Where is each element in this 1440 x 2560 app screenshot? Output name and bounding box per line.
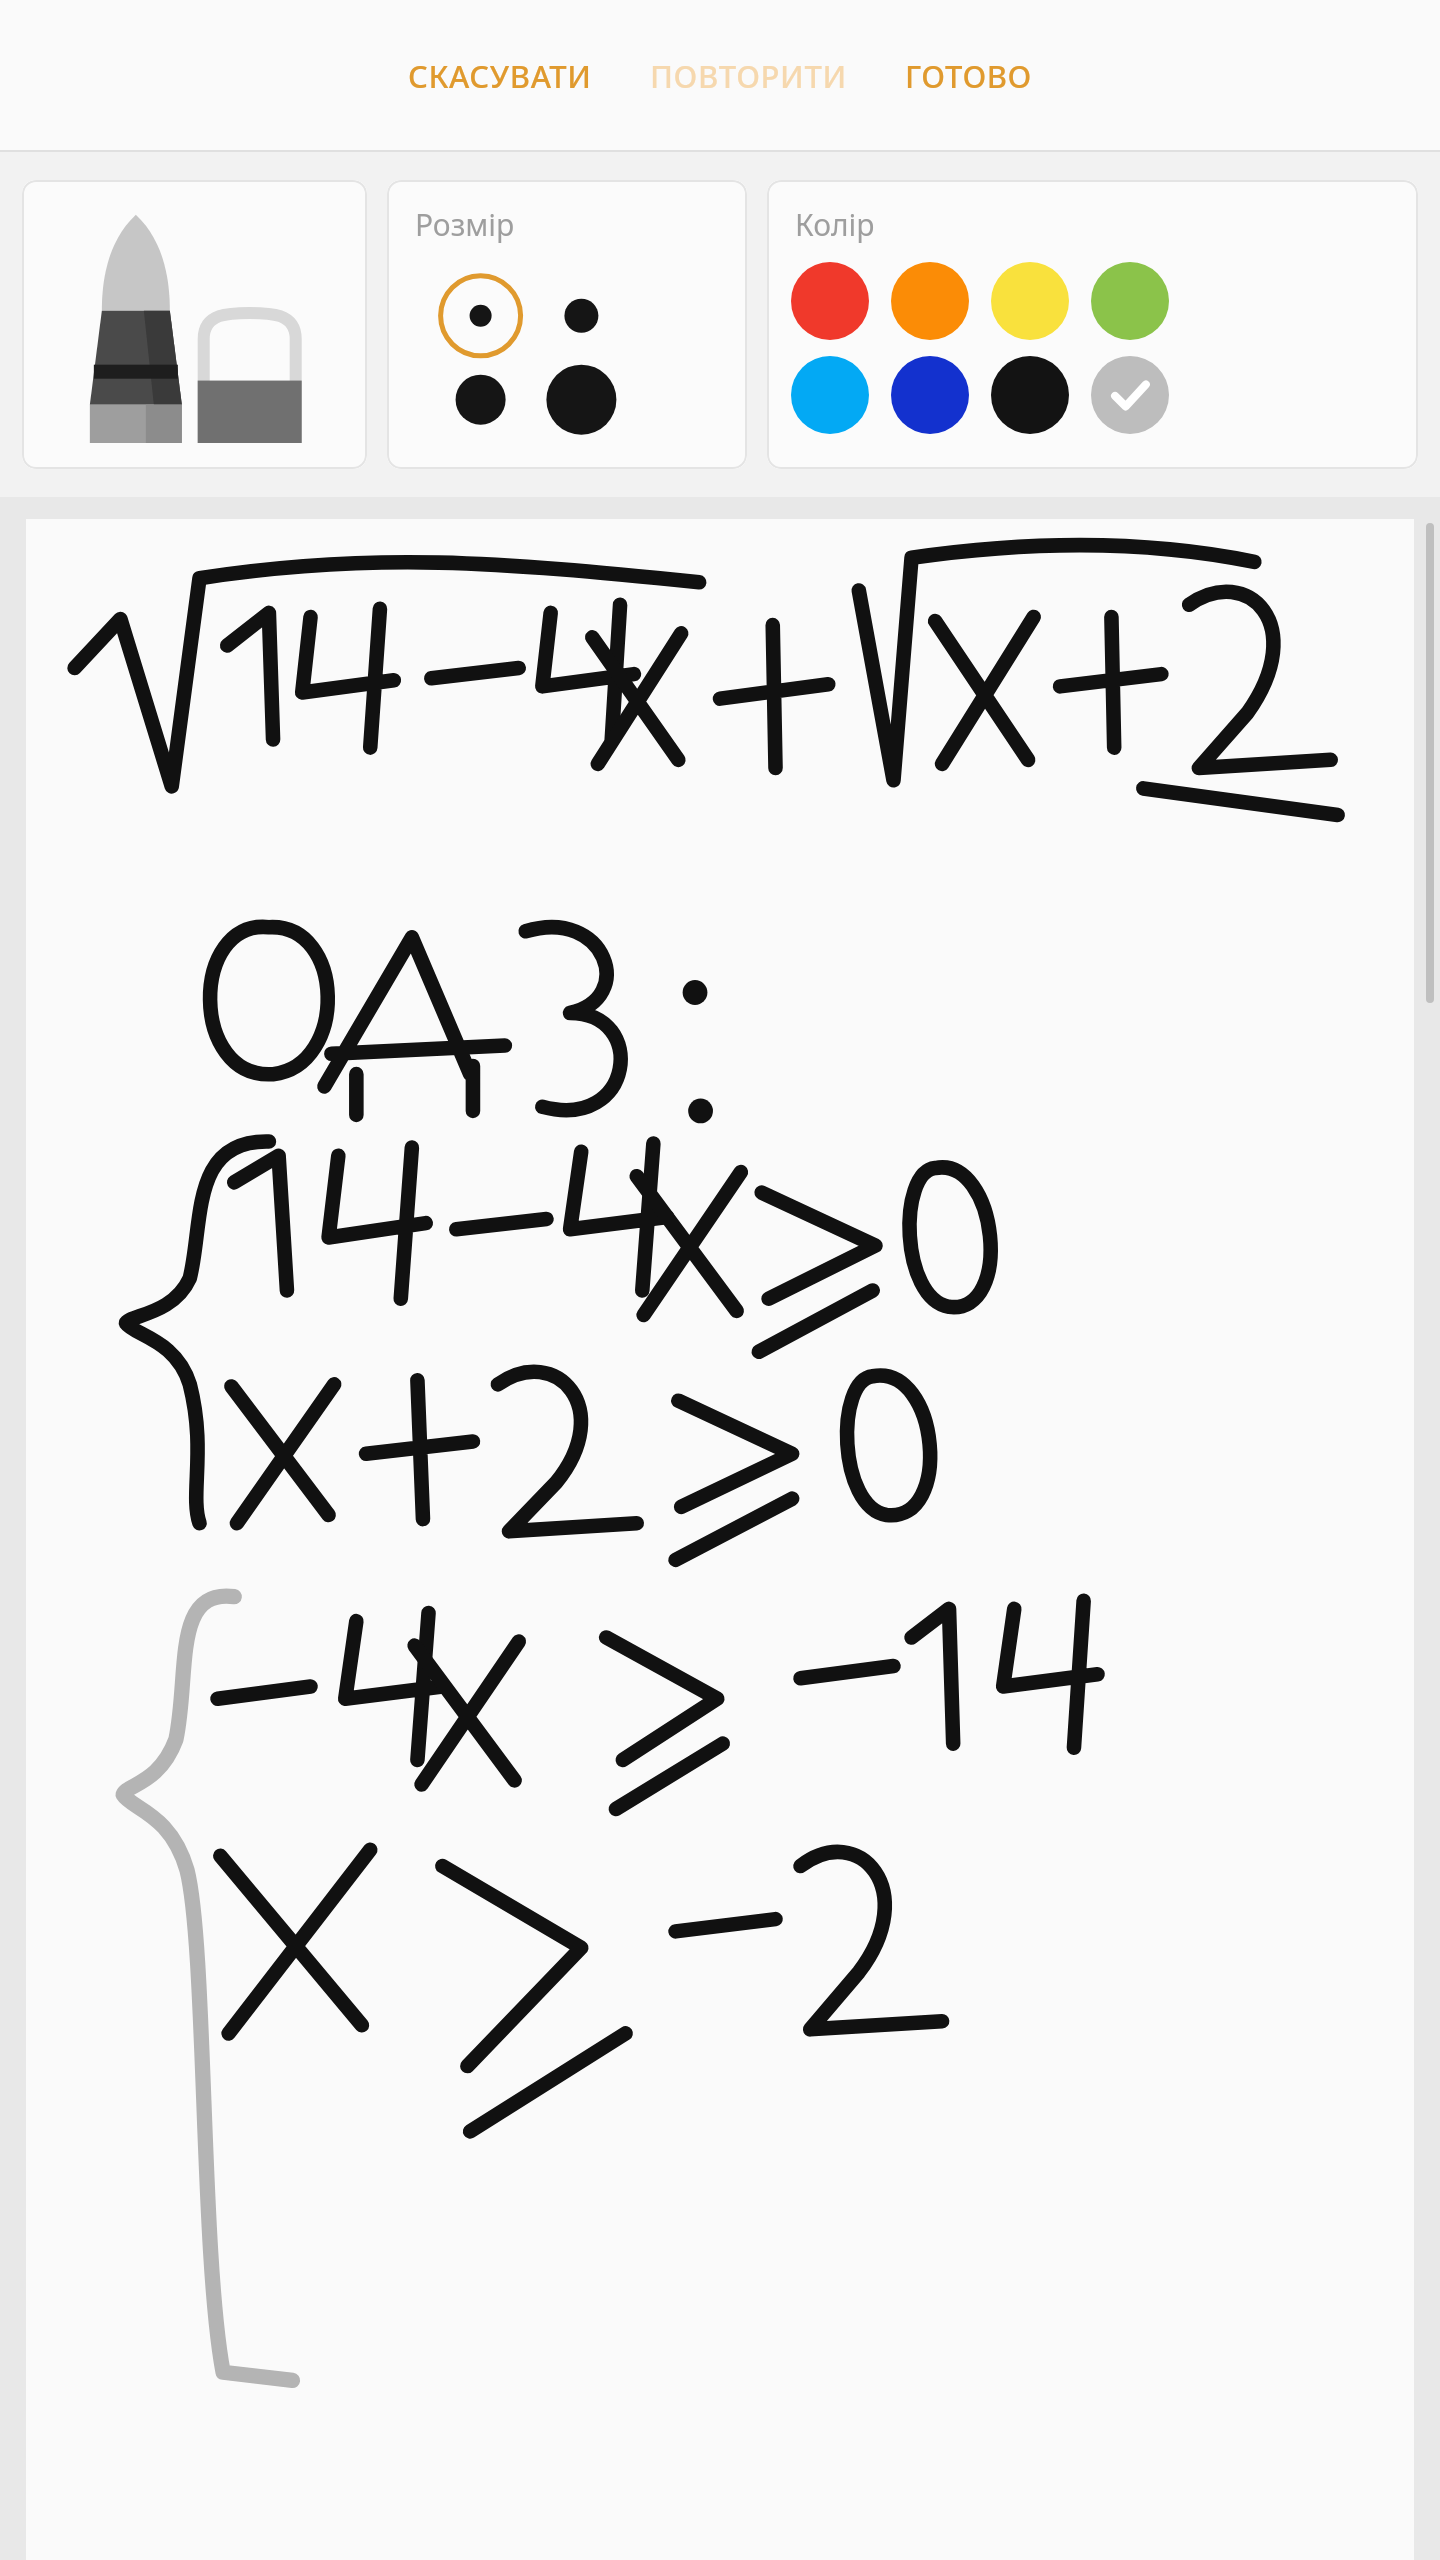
button[interactable]: Colour (791, 262, 869, 340)
button[interactable]: ГОТОВО (887, 41, 1050, 111)
staticText: Розмір (415, 204, 515, 245)
button[interactable]: Drawing canvas (26, 519, 1414, 2560)
button[interactable]: Brush size (387, 180, 747, 469)
button[interactable]: Colour (991, 356, 1069, 434)
button[interactable]: СКАСУВАТИ (390, 41, 610, 111)
button[interactable]: Pen and eraser (22, 180, 367, 469)
button[interactable]: Colour (891, 262, 969, 340)
staticText: Колір (795, 204, 875, 245)
staticText: СКАСУВАТИ (408, 55, 592, 97)
button[interactable]: Colour (991, 262, 1069, 340)
staticText: ГОТОВО (905, 55, 1032, 97)
button[interactable]: ПОВТОРИТИ (632, 41, 865, 111)
button[interactable]: Colour (791, 356, 869, 434)
button[interactable]: Colour (1091, 356, 1169, 434)
button[interactable]: Colour (1091, 262, 1169, 340)
staticText: ПОВТОРИТИ (650, 55, 847, 97)
button[interactable]: Colour (891, 356, 969, 434)
